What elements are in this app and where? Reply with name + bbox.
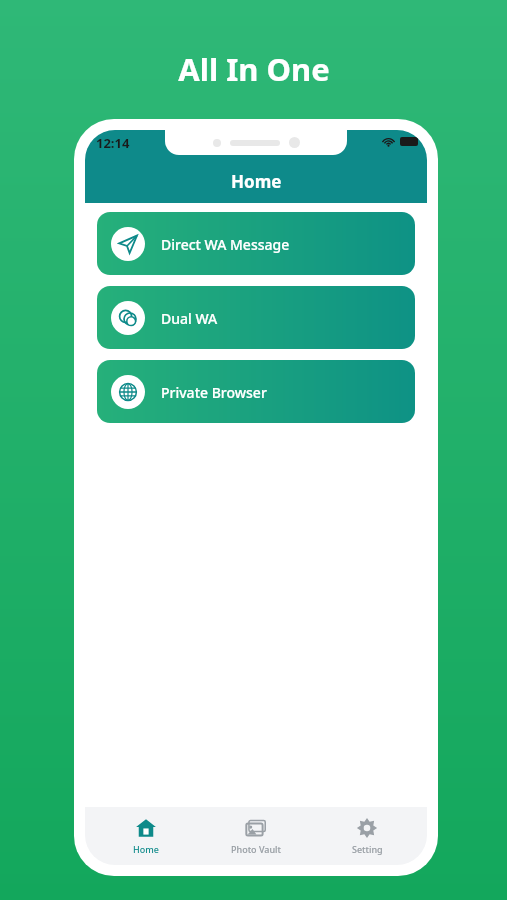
staticText: Private Browser [161,383,267,402]
button[interactable]: Direct WA Message [97,212,415,275]
button[interactable]: Photo Vault [206,811,306,861]
staticText: Setting [352,843,383,855]
staticText: 12:14 [96,134,130,152]
button[interactable]: Home [96,811,196,861]
staticText: Direct WA Message [161,235,290,254]
staticText: Photo Vault [231,843,281,855]
staticText: All In One [178,48,330,90]
button[interactable]: Dual WA [97,286,415,349]
staticText: Home [231,170,282,193]
button[interactable]: Setting [317,811,417,861]
staticText: Dual WA [161,309,218,328]
button[interactable]: Private Browser [97,360,415,423]
staticText: Home [133,843,159,855]
